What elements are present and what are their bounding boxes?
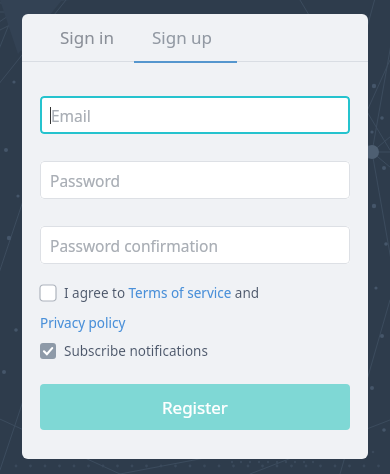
- button[interactable]: Unchecked: [40, 282, 260, 304]
- staticText: Email: [51, 105, 91, 126]
- staticText: Sign in: [60, 26, 114, 49]
- staticText: Password: [50, 170, 121, 191]
- button[interactable]: Checked: [40, 340, 208, 362]
- other: Checked: [40, 343, 56, 359]
- staticText: Privacy policy: [40, 314, 126, 332]
- staticText: Sign up: [152, 26, 213, 49]
- button[interactable]: Password confirmation: [40, 226, 350, 264]
- button[interactable]: Password: [40, 161, 350, 199]
- staticText: I agree to Terms of service and: [64, 284, 260, 302]
- button[interactable]: Email: [40, 96, 350, 134]
- other: Unchecked: [40, 285, 56, 301]
- button[interactable]: Sign up: [134, 14, 230, 61]
- staticText: Register: [162, 396, 228, 419]
- staticText: Password confirmation: [50, 235, 219, 256]
- button[interactable]: Privacy policy: [40, 313, 126, 333]
- button[interactable]: Sign in: [40, 14, 134, 61]
- staticText: Subscribe notifications: [64, 342, 208, 360]
- button[interactable]: Register: [40, 384, 350, 430]
